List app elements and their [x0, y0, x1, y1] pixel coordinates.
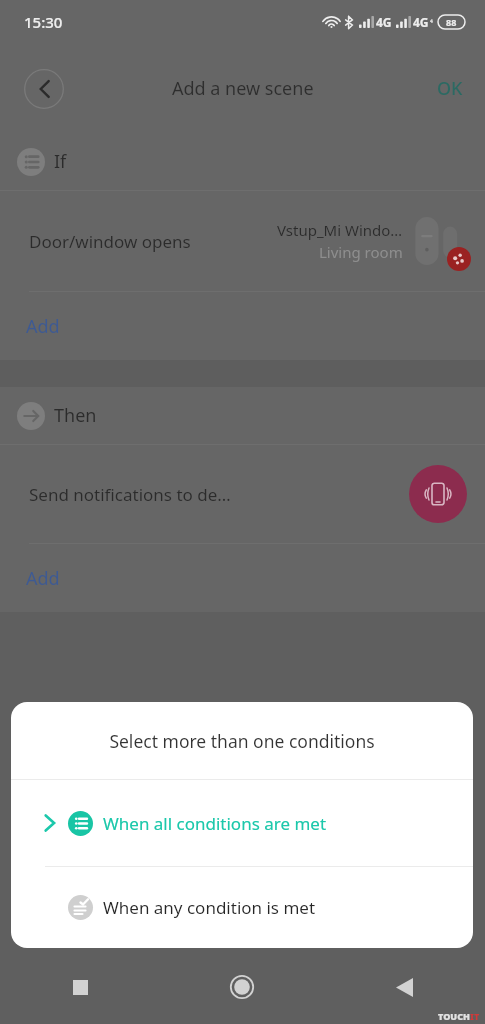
staticText: IT	[470, 1010, 480, 1022]
staticText: Select more than one conditions	[109, 729, 375, 753]
staticText: Send notifications to de…	[29, 483, 231, 506]
staticText: 15:30	[24, 12, 63, 32]
button[interactable]: Send notifications to de…	[0, 445, 485, 543]
button[interactable]: Recent apps	[0, 950, 161, 1024]
staticText: OK	[437, 76, 463, 101]
staticText: TOUCH	[438, 1010, 470, 1022]
button[interactable]: OK	[437, 76, 463, 101]
button[interactable]: Add	[26, 314, 60, 339]
staticText: Door/window opens	[29, 230, 191, 253]
staticText: 4G	[413, 14, 429, 30]
staticText: ⁴	[430, 17, 433, 28]
button[interactable]: Door/window opens	[0, 191, 485, 291]
staticText: Vstup_Mi Windo…	[277, 220, 403, 240]
staticText: If	[54, 149, 67, 174]
button[interactable]: When any condition is met	[11, 867, 473, 948]
button[interactable]: Add	[26, 566, 60, 591]
button[interactable]: Back	[323, 950, 485, 1024]
staticText: 88	[446, 16, 457, 28]
staticText: Then	[54, 403, 97, 428]
staticText: When all conditions are met	[103, 812, 327, 835]
staticText: 4G	[376, 14, 392, 30]
staticText: Living room	[319, 242, 403, 262]
button[interactable]: Home	[161, 950, 323, 1024]
staticText: Add	[26, 566, 60, 591]
staticText: Add	[26, 314, 60, 339]
button[interactable]: Send notifications to device	[409, 465, 467, 523]
button[interactable]: Back	[24, 69, 64, 109]
staticText: When any condition is met	[103, 896, 316, 919]
button[interactable]: When all conditions are met	[11, 780, 473, 866]
staticText: Add a new scene	[172, 76, 314, 101]
